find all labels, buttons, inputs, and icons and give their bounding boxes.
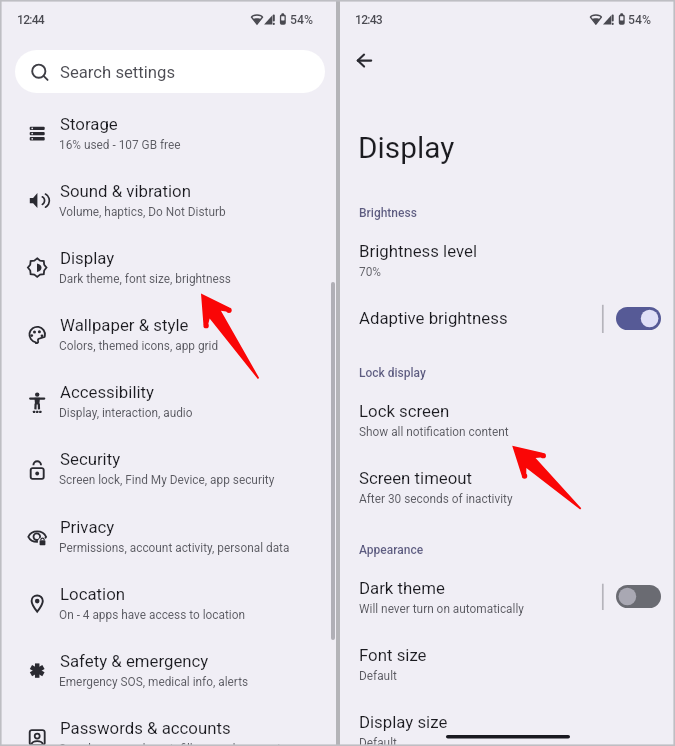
- staticText: Default: [359, 736, 397, 746]
- staticText: Permissions, account activity, personal …: [59, 541, 290, 555]
- button[interactable]: Back: [343, 42, 381, 80]
- staticText: Will never turn on automatically: [359, 602, 524, 616]
- staticText: Font size: [359, 645, 427, 665]
- staticText: Colors, themed icons, app grid: [59, 339, 219, 353]
- staticText: After 30 seconds of inactivity: [359, 492, 513, 506]
- staticText: Brightness: [359, 206, 417, 220]
- button[interactable]: Font size: [341, 633, 675, 685]
- staticText: Adaptive brightness: [359, 308, 508, 328]
- staticText: Lock display: [359, 366, 426, 380]
- staticText: Passwords & accounts: [60, 718, 231, 738]
- button[interactable]: Passwords & accounts: [0, 706, 332, 746]
- staticText: Default: [359, 669, 397, 683]
- staticText: 70%: [359, 265, 381, 279]
- button[interactable]: Accessibility: [0, 370, 332, 430]
- button[interactable]: Display size: [341, 700, 675, 746]
- button[interactable]: Security: [0, 437, 332, 497]
- staticText: Accessibility: [60, 382, 154, 402]
- staticText: Display, interaction, audio: [59, 406, 193, 420]
- staticText: Display: [60, 248, 115, 268]
- staticText: 16% used - 107 GB free: [59, 138, 181, 152]
- staticText: Security: [60, 449, 121, 469]
- staticText: Safety & emergency: [60, 651, 209, 671]
- staticText: 54%: [290, 13, 314, 27]
- button[interactable]: Safety & emergency: [0, 639, 332, 699]
- staticText: 12:44: [17, 13, 44, 27]
- staticText: Emergency SOS, medical info, alerts: [59, 675, 249, 689]
- staticText: Volume, haptics, Do Not Disturb: [59, 205, 226, 219]
- button[interactable]: Lock screen: [341, 389, 675, 441]
- staticText: Lock screen: [359, 401, 450, 421]
- button[interactable]: Dark theme: [341, 566, 675, 618]
- staticText: Sound & vibration: [60, 181, 191, 201]
- button[interactable]: Privacy: [0, 505, 332, 565]
- staticText: 54%: [628, 13, 652, 27]
- staticText: Screen timeout: [359, 468, 473, 488]
- staticText: Privacy: [60, 517, 115, 537]
- staticText: Screen lock, Find My Device, app securit…: [59, 473, 275, 487]
- staticText: Location: [60, 584, 125, 604]
- staticText: Appearance: [359, 543, 424, 557]
- button[interactable]: Storage: [0, 102, 332, 162]
- staticText: Wallpaper & style: [60, 315, 189, 335]
- staticText: Saved passwords, autofill, synced accoun…: [59, 742, 287, 746]
- staticText: Storage: [60, 114, 118, 134]
- staticText: Display: [358, 130, 455, 165]
- button[interactable]: Brightness level: [341, 229, 675, 281]
- staticText: Dark theme: [359, 578, 445, 598]
- staticText: Brightness level: [359, 241, 478, 261]
- staticText: 12:43: [355, 13, 382, 27]
- button[interactable]: Switch off: [616, 585, 661, 608]
- button[interactable]: Search settings: [15, 50, 325, 93]
- button[interactable]: Sound & vibration: [0, 169, 332, 229]
- staticText: Search settings: [60, 63, 176, 83]
- staticText: Show all notification content: [359, 425, 509, 439]
- staticText: Dark theme, font size, brightness: [59, 272, 231, 286]
- button[interactable]: Adaptive brightness: [341, 296, 675, 338]
- button[interactable]: Location: [0, 572, 332, 632]
- button[interactable]: Display: [0, 236, 332, 296]
- button[interactable]: Wallpaper & style: [0, 303, 332, 363]
- staticText: Display size: [359, 712, 448, 732]
- staticText: On - 4 apps have access to location: [59, 608, 246, 622]
- button[interactable]: Screen timeout: [341, 456, 675, 508]
- button[interactable]: Switch on: [616, 307, 661, 330]
